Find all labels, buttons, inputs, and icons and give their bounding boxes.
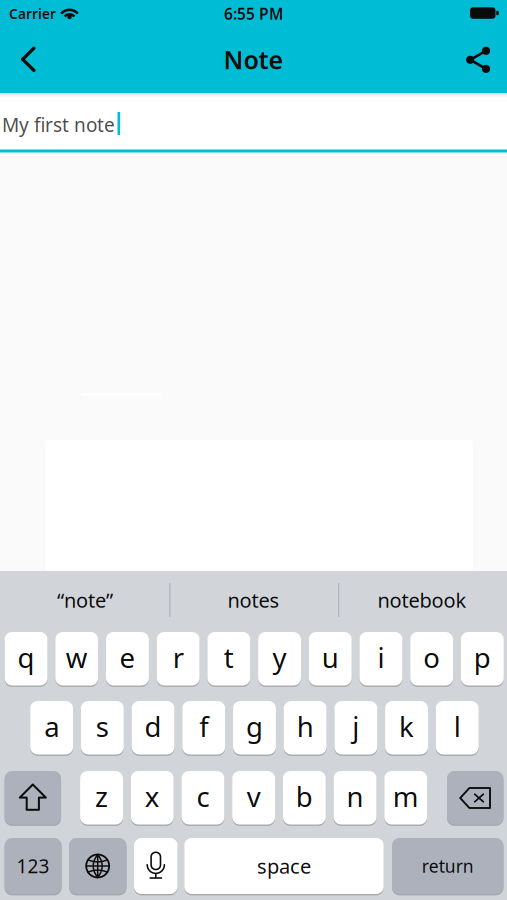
staticText: v	[247, 778, 261, 814]
staticText: return	[422, 854, 474, 878]
button[interactable]: “note”	[5, 578, 165, 622]
staticText: p	[474, 639, 491, 675]
staticText: f	[199, 708, 208, 744]
button[interactable]: x	[131, 771, 174, 824]
staticText: space	[257, 853, 311, 879]
button[interactable]	[69, 838, 126, 894]
staticText: 123	[17, 853, 50, 879]
button[interactable]: l	[436, 701, 479, 754]
button[interactable]: r	[157, 632, 200, 685]
staticText: r	[173, 639, 184, 675]
button[interactable]	[447, 771, 503, 824]
button[interactable]: space	[184, 838, 384, 894]
button[interactable]	[5, 771, 61, 824]
staticText: m	[393, 778, 419, 814]
staticText: y	[272, 639, 286, 675]
button[interactable]: y	[258, 632, 301, 685]
button[interactable]: q	[5, 632, 47, 685]
button[interactable]: i	[359, 632, 402, 685]
staticText: u	[322, 639, 339, 675]
staticText: o	[423, 639, 440, 675]
button[interactable]: d	[132, 701, 174, 754]
button[interactable]: h	[284, 701, 327, 754]
staticText: d	[144, 708, 161, 744]
staticText: j	[352, 708, 359, 744]
button[interactable]	[134, 838, 178, 894]
button[interactable]: My first note	[0, 93, 507, 150]
button[interactable]: b	[283, 771, 326, 824]
staticText: 6:55 PM	[224, 3, 283, 24]
button[interactable]: 123	[5, 838, 62, 894]
staticText: “note”	[57, 587, 113, 613]
staticText: t	[224, 639, 234, 675]
button[interactable]: n	[334, 771, 376, 824]
button[interactable]	[9, 42, 65, 77]
staticText: k	[399, 708, 414, 744]
button[interactable]: a	[30, 701, 73, 754]
staticText: b	[296, 778, 313, 814]
button[interactable]: k	[385, 701, 428, 754]
button[interactable]: j	[334, 701, 377, 754]
staticText: s	[96, 708, 109, 744]
staticText: My first note	[2, 112, 115, 137]
button[interactable]: z	[80, 771, 123, 824]
button[interactable]: m	[384, 771, 427, 824]
staticText: Note	[223, 43, 283, 76]
staticText: q	[17, 639, 34, 675]
staticText: z	[95, 778, 108, 814]
button[interactable]: notebook	[342, 578, 502, 622]
button[interactable]: v	[232, 771, 275, 824]
button[interactable]: w	[55, 632, 98, 685]
button[interactable]: c	[181, 771, 224, 824]
staticText: e	[119, 639, 135, 675]
button[interactable]: s	[81, 701, 124, 754]
staticText: c	[196, 778, 209, 814]
button[interactable]: u	[309, 632, 352, 685]
button[interactable]: e	[106, 632, 149, 685]
staticText: x	[145, 778, 160, 814]
button[interactable]: p	[461, 632, 504, 685]
staticText: notes	[227, 587, 279, 613]
button[interactable]: t	[207, 632, 250, 685]
button[interactable]	[456, 40, 500, 80]
staticText: l	[454, 708, 461, 744]
staticText: notebook	[377, 587, 466, 613]
staticText: a	[44, 708, 59, 744]
staticText: g	[246, 708, 263, 744]
staticText: w	[66, 639, 88, 675]
button[interactable]: notes	[173, 578, 333, 622]
staticText: i	[377, 639, 384, 675]
staticText: h	[297, 708, 314, 744]
button[interactable]: o	[410, 632, 453, 685]
button[interactable]: f	[182, 701, 225, 754]
button[interactable]: g	[233, 701, 276, 754]
staticText: Carrier	[9, 5, 56, 23]
button[interactable]: return	[392, 838, 503, 894]
staticText: n	[346, 778, 363, 814]
